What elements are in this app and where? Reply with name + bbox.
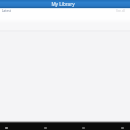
staticText: See all [116, 9, 126, 13]
staticText: My Library [51, 1, 75, 7]
button[interactable]: See all [116, 9, 126, 13]
button[interactable]: Latest [2, 9, 11, 13]
button[interactable]: Back [1, 123, 11, 130]
button[interactable]: Recent apps [78, 123, 88, 130]
button[interactable]: Home [40, 123, 50, 130]
button[interactable]: More [117, 123, 127, 130]
staticText: Latest [2, 9, 11, 13]
